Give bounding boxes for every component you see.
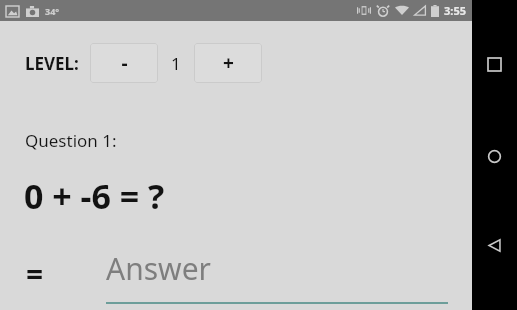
staticText: Question 1:: [25, 129, 117, 152]
staticText: 1: [171, 52, 181, 75]
staticText: Answer: [106, 248, 211, 289]
staticText: -: [121, 50, 128, 76]
staticText: =: [26, 253, 44, 294]
button[interactable]: -: [90, 43, 158, 83]
button[interactable]: Home: [472, 136, 517, 176]
button[interactable]: Recent apps: [472, 44, 517, 84]
button[interactable]: Back: [472, 225, 517, 265]
button[interactable]: Answer: [106, 247, 448, 305]
staticText: +: [223, 50, 234, 76]
staticText: 34°: [45, 5, 60, 17]
staticText: 0 + -6 = ?: [24, 173, 165, 219]
staticText: LEVEL:: [25, 52, 79, 75]
button[interactable]: +: [194, 43, 262, 83]
staticText: 3:55: [444, 3, 466, 18]
